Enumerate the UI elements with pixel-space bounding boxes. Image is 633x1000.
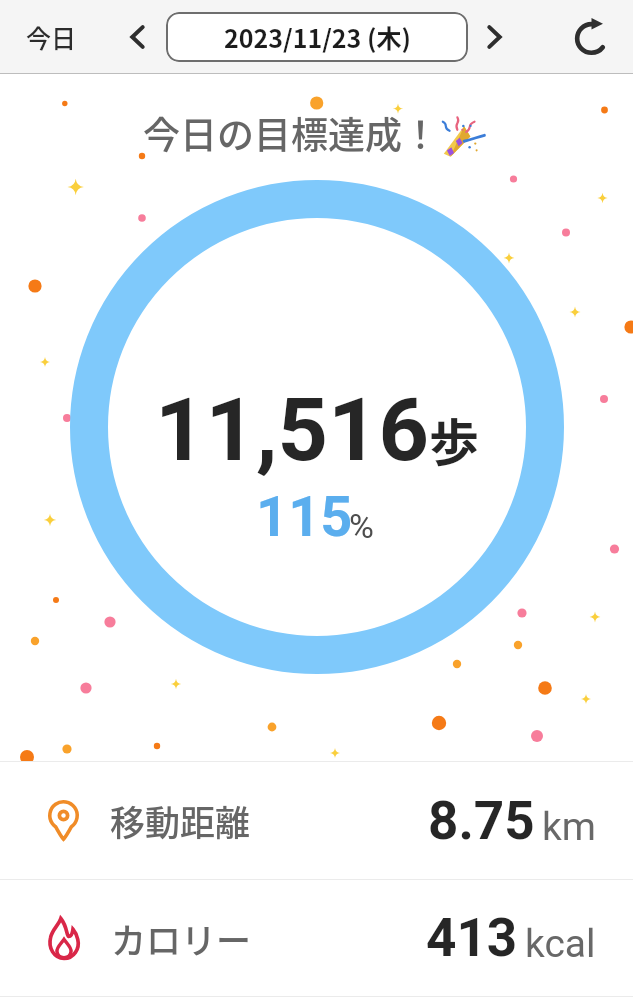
button[interactable]: 移動距離: [0, 762, 633, 879]
staticText: 8.75: [428, 790, 535, 852]
button[interactable]: カロリー: [0, 880, 633, 996]
button[interactable]: 今日: [0, 0, 110, 74]
button[interactable]: Next day: [468, 0, 520, 74]
staticText: カロリー: [111, 913, 252, 964]
button[interactable]: Previous day: [110, 0, 166, 74]
staticText: km: [542, 804, 596, 850]
staticText: 413: [426, 907, 518, 969]
staticText: 11,516: [155, 378, 429, 481]
staticText: 115: [256, 484, 353, 550]
staticText: 2023/11/23 (木): [224, 19, 411, 55]
staticText: 今日の目標達成！: [143, 106, 439, 160]
button[interactable]: 2023/11/23 (木): [166, 12, 468, 62]
staticText: 今日: [26, 19, 77, 55]
staticText: 歩: [429, 403, 479, 475]
staticText: kcal: [525, 921, 596, 967]
button[interactable]: Refresh: [520, 0, 633, 74]
staticText: %: [349, 506, 374, 546]
staticText: 移動距離: [110, 795, 251, 846]
